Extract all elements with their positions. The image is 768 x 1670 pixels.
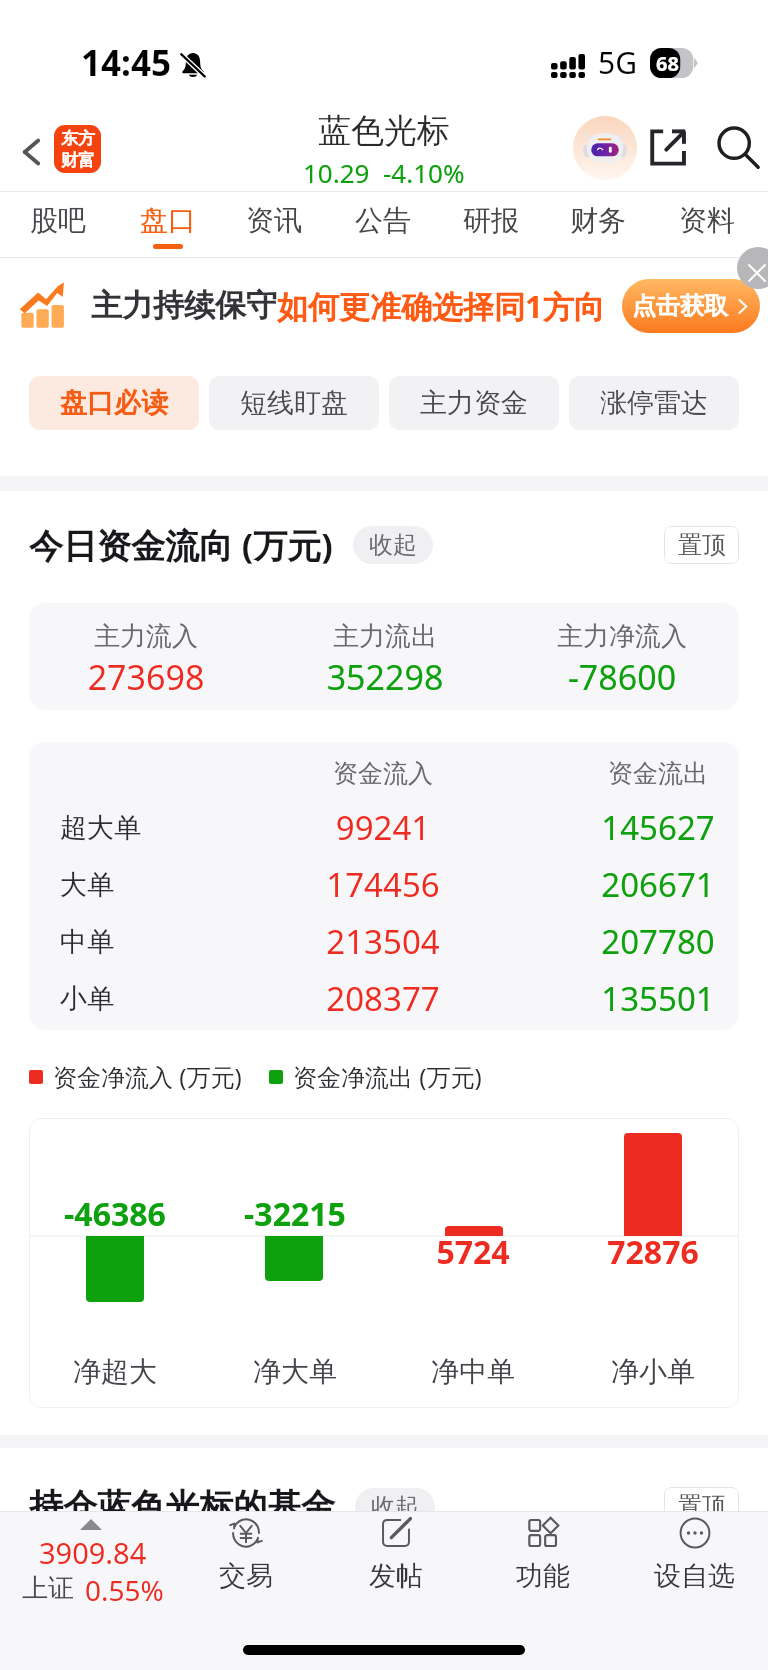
staticText: 今日资金流向 (万元) — [29, 522, 333, 568]
staticText: 短线盯盘 — [240, 386, 348, 420]
staticText: 资金流出 — [558, 758, 739, 789]
staticText: 中单 — [60, 925, 114, 959]
button[interactable]: 交易 — [176, 1515, 316, 1617]
staticText: 置顶 — [678, 530, 726, 560]
staticText: 功能 — [516, 1559, 570, 1593]
button[interactable]: 公告 — [329, 192, 437, 258]
staticText: 3909.84 — [39, 1533, 147, 1572]
button[interactable]: Search — [710, 120, 766, 176]
staticText: 设自选 — [654, 1559, 735, 1593]
staticText: -46386 — [29, 1192, 205, 1236]
staticText: 点击获取 — [632, 291, 728, 321]
staticText: 发帖 — [369, 1559, 423, 1593]
button[interactable]: 盘口必读 — [29, 376, 199, 430]
staticText: 上证 — [22, 1572, 74, 1605]
staticText: 股吧 — [30, 203, 86, 238]
staticText: 174456 — [283, 862, 483, 907]
staticText: 研报 — [463, 203, 519, 238]
staticText: 207780 — [558, 919, 739, 964]
staticText: 净大单 — [205, 1354, 385, 1389]
staticText: 大单 — [60, 868, 114, 902]
button[interactable]: 收起 — [355, 1488, 435, 1526]
staticText: 资金流入 — [283, 758, 483, 789]
button[interactable]: 设自选 — [624, 1515, 764, 1617]
staticText: 10.29 — [303, 155, 370, 190]
staticText: 盘口 — [140, 203, 196, 238]
staticText: 352298 — [285, 654, 485, 700]
staticText: 资料 — [679, 203, 735, 238]
button[interactable]: 资料 — [653, 192, 761, 258]
button[interactable]: 主力持续保守 — [0, 259, 768, 352]
button[interactable]: 财务 — [544, 192, 652, 258]
button[interactable]: East Money — [54, 125, 101, 173]
button[interactable]: 发帖 — [326, 1515, 466, 1617]
button[interactable]: 研报 — [437, 192, 545, 258]
button[interactable]: AI assistant — [573, 116, 637, 180]
staticText: 213504 — [283, 919, 483, 964]
button[interactable]: 置顶 — [664, 1487, 739, 1525]
staticText: 主力流入 — [46, 620, 246, 653]
staticText: 主力持续保守 — [91, 286, 277, 325]
button[interactable]: 点击获取 — [622, 279, 760, 333]
staticText: 0.55% — [85, 1571, 164, 1609]
button[interactable]: 收起 — [353, 526, 433, 564]
staticText: 5G — [598, 42, 637, 83]
button[interactable]: 3909.84 — [6, 1517, 186, 1615]
button[interactable]: 置顶 — [664, 526, 739, 564]
staticText: 收起 — [371, 1492, 419, 1522]
staticText: 财务 — [570, 203, 626, 238]
button[interactable]: 盘口 — [114, 192, 222, 258]
button[interactable]: 短线盯盘 — [209, 376, 379, 430]
staticText: 主力净流入 — [522, 620, 722, 653]
staticText: -4.10% — [383, 155, 465, 190]
staticText: 净小单 — [563, 1354, 739, 1389]
staticText: 72876 — [563, 1230, 739, 1274]
staticText: 盘口必读 — [60, 386, 168, 420]
staticText: 超大单 — [60, 811, 141, 845]
staticText: 135501 — [558, 976, 739, 1021]
staticText: 99241 — [283, 805, 483, 850]
button[interactable]: Back — [8, 128, 56, 176]
button[interactable]: 功能 — [473, 1515, 613, 1617]
staticText: 财富 — [61, 150, 95, 171]
staticText: 主力流出 — [285, 620, 485, 653]
staticText: 主力资金 — [420, 386, 528, 420]
staticText: 208377 — [283, 976, 483, 1021]
staticText: 68 — [656, 50, 679, 77]
staticText: 资讯 — [246, 203, 302, 238]
staticText: 东方 — [61, 128, 95, 149]
staticText: 持仓蓝色光标的基金 — [29, 1485, 335, 1528]
button[interactable]: Share — [644, 120, 700, 176]
button[interactable]: 主力资金 — [389, 376, 559, 430]
staticText: -32215 — [205, 1192, 385, 1236]
staticText: 资金净流入 (万元) — [53, 1060, 242, 1093]
staticText: 净超大 — [29, 1354, 205, 1389]
staticText: 14:45 — [81, 39, 171, 87]
staticText: 交易 — [219, 1559, 273, 1593]
staticText: 145627 — [558, 805, 739, 850]
button[interactable]: 资讯 — [220, 192, 328, 258]
staticText: 公告 — [355, 203, 411, 238]
staticText: 小单 — [60, 982, 114, 1016]
button[interactable]: Close ad — [737, 247, 768, 289]
staticText: 蓝色光标 — [318, 110, 450, 152]
button[interactable]: 涨停雷达 — [569, 376, 739, 430]
staticText: 273698 — [46, 654, 246, 700]
staticText: -78600 — [522, 654, 722, 700]
staticText: 5724 — [383, 1230, 563, 1274]
staticText: 资金净流出 (万元) — [293, 1060, 482, 1093]
staticText: 收起 — [369, 530, 417, 560]
button[interactable]: 股吧 — [4, 192, 112, 258]
staticText: 涨停雷达 — [600, 386, 708, 420]
staticText: 净中单 — [383, 1354, 563, 1389]
staticText: 如何更准确选择同1方向 — [277, 285, 605, 327]
staticText: 206671 — [558, 862, 739, 907]
staticText: 置顶 — [678, 1491, 726, 1521]
